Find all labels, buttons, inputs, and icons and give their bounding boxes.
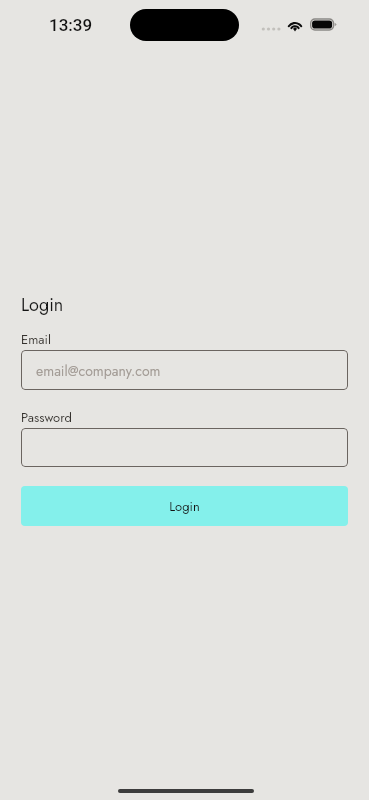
staticText: Email [21,330,51,349]
other: Wi-Fi [286,17,304,31]
button[interactable]: Login [21,486,348,526]
button[interactable] [21,428,348,467]
staticText: email@company.com [36,361,161,381]
button[interactable]: email@company.com [21,350,348,390]
staticText: Password [21,408,73,427]
staticText: 13:39 [49,15,93,35]
other: Cellular signal [260,25,282,33]
other: Battery [309,17,338,32]
staticText: Login [21,292,64,318]
staticText: Login [169,497,200,516]
